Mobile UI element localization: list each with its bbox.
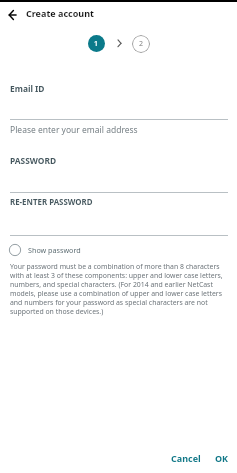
staticText: 1 [94,39,99,49]
staticText: RE-ENTER PASSWORD [10,197,93,208]
button[interactable]: 2 [132,35,150,53]
staticText: Email ID [10,83,45,94]
staticText: Cancel [171,452,201,464]
staticText: Create account [26,7,94,19]
staticText: OK [215,452,229,464]
staticText: Your password must be a combination of m… [10,262,232,316]
staticText: Please enter your email address [10,124,138,136]
staticText: 2 [139,39,144,49]
staticText: PASSWORD [10,155,57,166]
button[interactable]: OK [212,448,232,468]
staticText: Show password [28,245,81,255]
button[interactable]: Show password [7,242,81,258]
button[interactable]: Cancel [168,448,204,468]
button[interactable]: Back [3,5,23,25]
button[interactable]: 1 [88,35,105,52]
